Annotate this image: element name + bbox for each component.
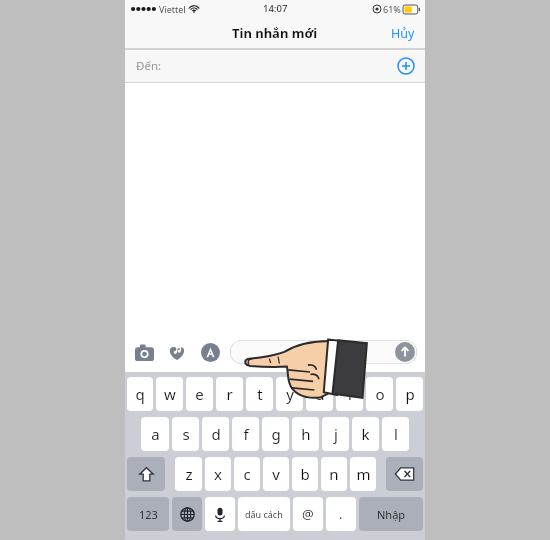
staticText: v	[272, 464, 280, 484]
staticText: r	[226, 384, 233, 404]
staticText: a	[151, 424, 160, 444]
button[interactable]: w	[156, 377, 183, 411]
staticText: q	[135, 384, 145, 404]
button[interactable]: e	[186, 377, 213, 411]
staticText: Tin nhắn mới	[232, 24, 318, 42]
staticText: o	[375, 384, 385, 404]
staticText: w	[164, 384, 176, 404]
staticText: x	[214, 464, 222, 484]
button[interactable]: n	[321, 457, 347, 491]
staticText: y	[286, 384, 294, 404]
button[interactable]: @	[293, 497, 323, 531]
staticText: 61%	[383, 3, 401, 15]
staticText: d	[211, 424, 221, 444]
button[interactable]: Add contact	[397, 57, 415, 75]
button[interactable]: Dictate	[205, 497, 235, 531]
button[interactable]: dấu cách	[238, 497, 290, 531]
button[interactable]: 123	[127, 497, 169, 531]
button[interactable]: Change keyboard	[172, 497, 202, 531]
staticText: dấu cách	[245, 508, 283, 520]
staticText: Hủy	[391, 25, 415, 42]
staticText: i	[348, 384, 352, 404]
staticText: t	[257, 384, 263, 404]
button[interactable]: d	[202, 417, 229, 451]
staticText: @	[302, 505, 314, 523]
staticText: 123	[139, 507, 158, 522]
button[interactable]: j	[322, 417, 349, 451]
button[interactable]: Camera	[133, 341, 155, 363]
button[interactable]: x	[205, 457, 231, 491]
staticText: m	[356, 464, 371, 484]
button[interactable]: y	[276, 377, 303, 411]
button[interactable]: p	[396, 377, 423, 411]
button[interactable]: b	[292, 457, 318, 491]
button[interactable]: l	[382, 417, 409, 451]
staticText: j	[334, 424, 338, 444]
button[interactable]: v	[263, 457, 289, 491]
button[interactable]: .	[326, 497, 356, 531]
button[interactable]: Backspace	[386, 457, 423, 491]
staticText: n	[329, 464, 339, 484]
button[interactable]: Digital Touch	[166, 341, 188, 363]
button[interactable]: Send	[395, 342, 415, 362]
staticText: h	[301, 424, 311, 444]
button[interactable]: Send	[230, 340, 417, 364]
button[interactable]: f	[232, 417, 259, 451]
staticText: l	[394, 424, 398, 444]
staticText: Viettel	[159, 3, 186, 15]
staticText: u	[315, 384, 325, 404]
staticText: b	[300, 464, 310, 484]
button[interactable]: q	[127, 377, 153, 411]
staticText: e	[195, 384, 204, 404]
button[interactable]: o	[366, 377, 393, 411]
button[interactable]: k	[352, 417, 379, 451]
staticText: c	[243, 464, 251, 484]
button[interactable]: h	[292, 417, 319, 451]
button[interactable]: r	[216, 377, 243, 411]
staticText: g	[271, 424, 281, 444]
staticText: f	[243, 424, 249, 444]
button[interactable]: Nhập	[359, 497, 423, 531]
button[interactable]: App Store	[199, 341, 221, 363]
button[interactable]: t	[246, 377, 273, 411]
staticText: s	[182, 424, 190, 444]
button[interactable]: u	[306, 377, 333, 411]
button[interactable]: s	[172, 417, 199, 451]
button[interactable]: a	[141, 417, 169, 451]
staticText: 14:07	[263, 2, 288, 15]
staticText: Nhập	[377, 507, 406, 522]
button[interactable]: i	[336, 377, 363, 411]
staticText: .	[339, 505, 343, 523]
staticText: p	[405, 384, 415, 404]
button[interactable]: m	[350, 457, 376, 491]
staticText: k	[361, 424, 370, 444]
button[interactable]: c	[234, 457, 260, 491]
button[interactable]: Hủy	[381, 21, 425, 46]
staticText: Đến:	[136, 58, 162, 74]
button[interactable]: z	[175, 457, 202, 491]
staticText: z	[185, 464, 193, 484]
button[interactable]: Đến:	[125, 49, 425, 83]
button[interactable]: g	[262, 417, 289, 451]
button[interactable]: Shift	[127, 457, 165, 491]
